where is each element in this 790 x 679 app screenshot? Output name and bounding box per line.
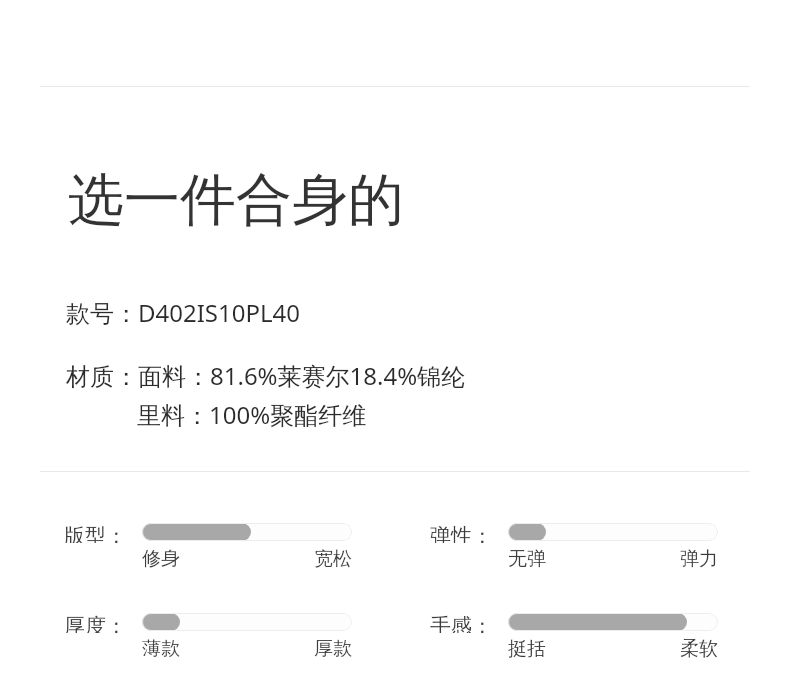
staticText: 厚度：	[64, 613, 127, 633]
staticText: 材质：面料：81.6%莱赛尔18.4%锦纶	[66, 359, 466, 392]
staticText: 宽松	[314, 547, 352, 571]
staticText: 弹力	[680, 547, 718, 571]
button[interactable]	[508, 523, 718, 541]
staticText: 手感：	[430, 613, 493, 633]
button[interactable]	[142, 613, 352, 631]
staticText: 挺括	[508, 637, 546, 661]
staticText: 厚款	[314, 637, 352, 661]
staticText: 薄款	[142, 637, 180, 661]
staticText: 无弹	[508, 547, 546, 571]
staticText: 弹性：	[430, 523, 493, 543]
staticText: 选一件合身的	[68, 165, 404, 236]
staticText: 修身	[142, 547, 180, 571]
button[interactable]	[142, 523, 352, 541]
button[interactable]	[508, 613, 718, 631]
staticText: 版型：	[64, 523, 127, 543]
staticText: 柔软	[680, 637, 718, 661]
staticText: 款号：D402IS10PL40	[66, 296, 301, 329]
staticText: 里料：100%聚酯纤维	[137, 398, 367, 431]
